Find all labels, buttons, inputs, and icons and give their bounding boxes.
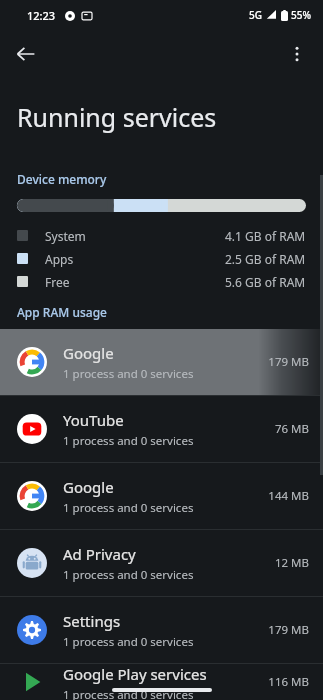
staticText: Running services xyxy=(17,100,217,134)
staticText: 4.1 GB of RAM xyxy=(225,228,306,244)
button[interactable]: Google Play services xyxy=(0,664,323,700)
staticText: 76 MB xyxy=(274,421,309,437)
button[interactable]: Back xyxy=(6,34,46,74)
staticText: Settings xyxy=(63,611,121,631)
staticText: Google Play services xyxy=(63,664,207,684)
staticText: 1 process and 0 services xyxy=(63,433,194,449)
staticText: 12:23 xyxy=(27,8,56,23)
button[interactable]: Google xyxy=(0,329,323,395)
staticText: System xyxy=(45,228,86,244)
staticText: 1 process and 0 services xyxy=(63,567,194,583)
staticText: 2.5 GB of RAM xyxy=(225,251,306,267)
staticText: 1 process and 0 services xyxy=(63,366,194,382)
staticText: Device memory xyxy=(17,171,107,187)
button[interactable]: More options xyxy=(277,34,317,74)
button[interactable]: Settings xyxy=(0,597,323,663)
staticText: 5G xyxy=(249,8,262,22)
staticText: 116 MB xyxy=(268,674,309,690)
staticText: 144 MB xyxy=(268,488,309,504)
button[interactable]: YouTube xyxy=(0,396,323,462)
button[interactable]: Google xyxy=(0,463,323,529)
staticText: 179 MB xyxy=(268,622,309,638)
staticText: YouTube xyxy=(63,410,124,430)
staticText: Google xyxy=(63,477,114,497)
staticText: 12 MB xyxy=(274,555,309,571)
staticText: 5.6 GB of RAM xyxy=(225,274,306,290)
staticText: Google xyxy=(63,343,114,363)
staticText: Free xyxy=(45,274,70,290)
staticText: 1 process and 0 services xyxy=(63,634,194,650)
staticText: App RAM usage xyxy=(17,304,107,320)
staticText: 179 MB xyxy=(268,354,309,370)
staticText: Apps xyxy=(45,251,74,267)
button[interactable]: Ad Privacy xyxy=(0,530,323,596)
staticText: 1 process and 0 services xyxy=(63,500,194,516)
staticText: Ad Privacy xyxy=(63,544,136,564)
staticText: 55% xyxy=(291,8,311,22)
staticText: 1 process and 0 services xyxy=(63,687,194,700)
